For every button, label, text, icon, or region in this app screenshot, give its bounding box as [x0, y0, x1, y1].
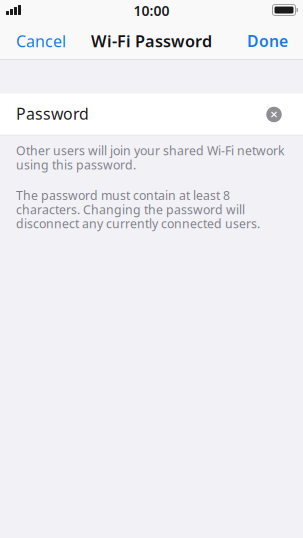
staticText: 10:00 — [133, 1, 169, 20]
button[interactable]: Cancel — [0, 22, 82, 60]
staticText: Wi-Fi Password — [91, 30, 212, 52]
staticText: Other users will join your shared Wi-Fi … — [16, 143, 285, 172]
staticText: Done — [247, 30, 288, 52]
staticText: Password — [16, 103, 89, 124]
button[interactable]: Done — [232, 22, 303, 60]
button[interactable]: Clear text — [259, 97, 289, 131]
staticText: The password must contain at least 8 cha… — [16, 188, 260, 231]
staticText: Cancel — [16, 30, 66, 52]
